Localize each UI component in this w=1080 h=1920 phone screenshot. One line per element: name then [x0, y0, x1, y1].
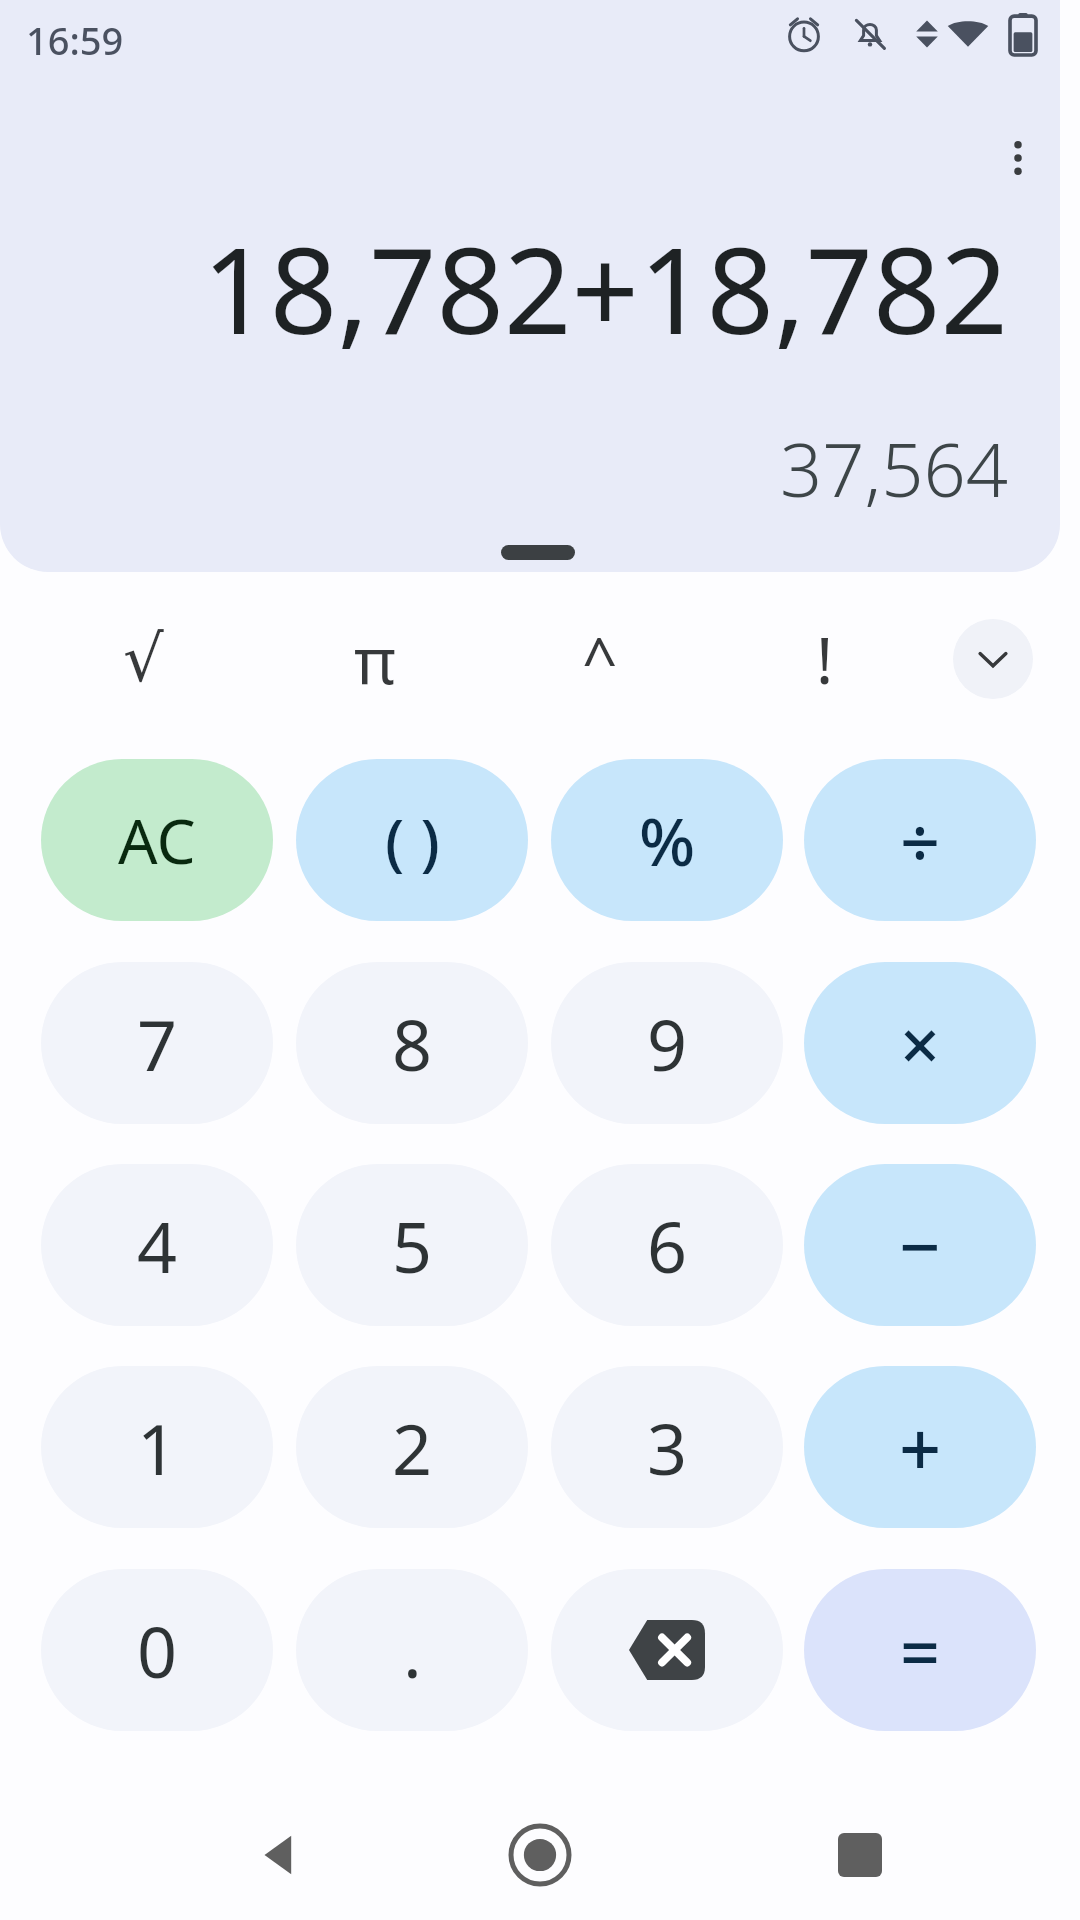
- staticText: 18,782+18,782: [0, 208, 1008, 369]
- staticText: 16:59: [26, 14, 124, 66]
- staticText: 9: [647, 996, 688, 1091]
- button[interactable]: Recent apps: [800, 1790, 920, 1920]
- staticText: %: [639, 795, 696, 885]
- button[interactable]: Home: [480, 1795, 600, 1915]
- button[interactable]: %: [551, 759, 783, 921]
- button[interactable]: More options: [978, 118, 1058, 198]
- staticText: .: [403, 1603, 422, 1698]
- button[interactable]: √: [63, 600, 223, 718]
- button[interactable]: Subtract: [804, 1164, 1036, 1326]
- staticText: ^: [582, 617, 618, 701]
- staticText: 3: [647, 1400, 688, 1495]
- staticText: −: [899, 1196, 941, 1294]
- staticText: 0: [137, 1603, 178, 1698]
- staticText: +: [899, 1397, 942, 1498]
- button[interactable]: Back: [222, 1790, 342, 1920]
- button[interactable]: 1: [41, 1366, 273, 1528]
- staticText: ÷: [900, 793, 941, 888]
- button[interactable]: ^: [520, 600, 680, 718]
- staticText: 8: [392, 996, 433, 1091]
- staticText: 6: [647, 1198, 688, 1293]
- staticText: 5: [392, 1198, 433, 1293]
- staticText: 2: [392, 1400, 433, 1495]
- staticText: ×: [900, 996, 941, 1091]
- button[interactable]: .: [296, 1569, 528, 1731]
- button[interactable]: Multiply: [804, 962, 1036, 1124]
- staticText: √: [123, 622, 164, 697]
- staticText: !: [816, 616, 834, 703]
- staticText: 1: [137, 1400, 178, 1495]
- staticText: AC: [118, 798, 196, 882]
- button[interactable]: 3: [551, 1366, 783, 1528]
- button[interactable]: Backspace: [551, 1569, 783, 1731]
- staticText: 37,564: [0, 418, 1008, 519]
- button[interactable]: 4: [41, 1164, 273, 1326]
- button[interactable]: π: [295, 600, 455, 718]
- staticText: 4: [137, 1198, 178, 1293]
- button[interactable]: !: [745, 600, 905, 718]
- button[interactable]: ( ): [296, 759, 528, 921]
- staticText: π: [354, 616, 396, 703]
- button[interactable]: AC: [41, 759, 273, 921]
- button[interactable]: 2: [296, 1366, 528, 1528]
- staticText: 7: [137, 996, 178, 1091]
- staticText: ( ): [385, 798, 440, 882]
- button[interactable]: 7: [41, 962, 273, 1124]
- button[interactable]: Equals: [804, 1569, 1036, 1731]
- staticText: =: [900, 1603, 941, 1698]
- button[interactable]: 9: [551, 962, 783, 1124]
- button[interactable]: 0: [41, 1569, 273, 1731]
- button[interactable]: 8: [296, 962, 528, 1124]
- button[interactable]: 5: [296, 1164, 528, 1326]
- button[interactable]: Divide: [804, 759, 1036, 921]
- button[interactable]: Add: [804, 1366, 1036, 1528]
- button[interactable]: 6: [551, 1164, 783, 1326]
- button[interactable]: Drag handle: [501, 545, 575, 560]
- button[interactable]: Expand scientific keys: [953, 619, 1033, 699]
